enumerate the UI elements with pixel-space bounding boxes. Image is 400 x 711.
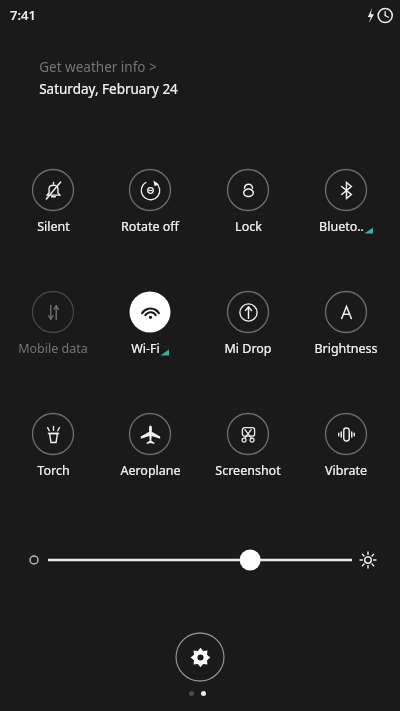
other: Charging, alarm set xyxy=(367,8,393,23)
staticText: Wi-Fi xyxy=(131,340,160,357)
button[interactable]: Rotate off xyxy=(104,168,196,235)
staticText: Blueto.. xyxy=(319,218,364,235)
button[interactable]: Brightness slider xyxy=(20,540,380,580)
staticText: Torch xyxy=(37,462,70,479)
button[interactable]: Settings xyxy=(175,632,225,682)
staticText: Vibrate xyxy=(325,462,367,479)
button[interactable]: Lock xyxy=(202,168,294,235)
staticText: 7:41 xyxy=(10,6,36,24)
button[interactable]: Brightness xyxy=(300,290,392,357)
button[interactable]: Aeroplane xyxy=(104,412,196,479)
button[interactable]: Mobile data xyxy=(7,290,99,357)
staticText: Brightness xyxy=(314,340,378,357)
staticText: Lock xyxy=(235,218,262,235)
staticText: Get weather info > xyxy=(39,58,157,76)
staticText: Silent xyxy=(37,218,70,235)
button[interactable]: Blueto.. xyxy=(300,168,392,235)
button[interactable]: Vibrate xyxy=(300,412,392,479)
staticText: Saturday, February 24 xyxy=(39,80,178,98)
staticText: Mobile data xyxy=(18,340,88,357)
button[interactable]: Screenshot xyxy=(202,412,294,479)
button[interactable]: Get weather info > xyxy=(39,58,157,76)
staticText: Mi Drop xyxy=(224,340,272,357)
button[interactable]: Wi-Fi xyxy=(104,290,196,357)
staticText: Screenshot xyxy=(215,462,281,479)
button[interactable]: Mi Drop xyxy=(202,290,294,357)
button[interactable]: Torch xyxy=(7,412,99,479)
staticText: Aeroplane xyxy=(120,462,181,479)
staticText: Rotate off xyxy=(121,218,179,235)
button[interactable]: Silent xyxy=(7,168,99,235)
